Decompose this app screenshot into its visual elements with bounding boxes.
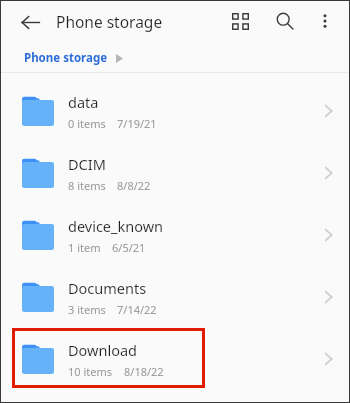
staticText: 3 items <box>68 302 106 317</box>
button[interactable]: Search <box>266 2 304 40</box>
staticText: Phone storage <box>24 50 108 66</box>
button[interactable]: device_known <box>0 204 350 266</box>
button[interactable]: Back <box>10 2 50 42</box>
staticText: device_known <box>68 216 164 236</box>
staticText: 7/14/22 <box>117 302 157 317</box>
button[interactable]: More options <box>306 2 344 40</box>
staticText: DCIM <box>68 154 106 174</box>
staticText: 0 items <box>68 116 106 131</box>
button[interactable]: Phone storage <box>22 47 125 69</box>
button[interactable]: data <box>0 80 350 142</box>
staticText: Documents <box>68 278 147 298</box>
staticText: Phone storage <box>56 11 163 32</box>
staticText: 8/18/22 <box>124 364 164 379</box>
staticText: 8 items <box>68 178 106 193</box>
staticText: 7/19/21 <box>117 116 157 131</box>
staticText: 1 item <box>68 240 101 255</box>
staticText: Download <box>68 340 137 360</box>
button[interactable]: Documents <box>0 266 350 328</box>
staticText: 8/8/22 <box>117 178 151 193</box>
button[interactable]: Grid view <box>221 2 259 40</box>
staticText: 10 items <box>68 364 113 379</box>
button[interactable]: Download <box>0 328 350 390</box>
staticText: 6/5/21 <box>112 240 146 255</box>
staticText: data <box>68 92 99 112</box>
button[interactable]: DCIM <box>0 142 350 204</box>
